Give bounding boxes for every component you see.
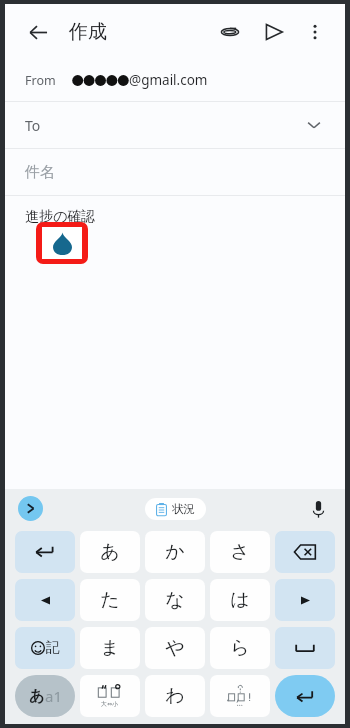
staticText: ら	[230, 636, 250, 660]
button[interactable]: 進捗の確認	[5, 196, 345, 489]
button[interactable]: その他のオプション	[299, 16, 331, 48]
staticText: 大⇔小	[101, 700, 119, 708]
staticText: あ	[100, 540, 120, 564]
staticText: 作成	[69, 20, 107, 44]
button[interactable]: や	[145, 627, 205, 669]
button[interactable]: は	[210, 579, 270, 621]
staticText: From	[25, 72, 56, 89]
button[interactable]: わ	[145, 675, 205, 717]
button[interactable]: た	[80, 579, 140, 621]
button[interactable]: 音声入力	[304, 495, 332, 523]
staticText: 件名	[25, 163, 55, 182]
staticText: 進捗の確認	[25, 208, 96, 226]
staticText: は	[230, 588, 250, 612]
button[interactable]: 濁点・半濁点	[80, 675, 140, 717]
staticText: To	[25, 116, 41, 135]
staticText: わ	[165, 684, 185, 708]
staticText: a1	[45, 686, 62, 706]
button[interactable]: 絵文字記号	[15, 627, 75, 669]
button[interactable]: 戻る	[23, 17, 53, 47]
button[interactable]: 添付ファイル	[213, 15, 247, 49]
button[interactable]: スペース	[275, 627, 335, 669]
button[interactable]: 送信	[257, 15, 291, 49]
staticText: な	[165, 588, 185, 612]
button[interactable]: 状況	[145, 498, 206, 520]
button[interactable]: 削除	[275, 531, 335, 573]
button[interactable]: な	[145, 579, 205, 621]
button[interactable]: ま	[80, 627, 140, 669]
button[interactable]: か	[145, 531, 205, 573]
staticText: 記	[46, 639, 60, 657]
staticText: 状況	[172, 502, 195, 516]
button[interactable]: To	[5, 102, 345, 148]
button[interactable]: ら	[210, 627, 270, 669]
button[interactable]: 件名	[5, 149, 345, 195]
staticText: ま	[100, 636, 120, 660]
staticText: か	[165, 540, 185, 564]
staticText: @gmail.com	[129, 71, 208, 89]
button[interactable]: 左	[15, 579, 75, 621]
button[interactable]: 入力モード切替	[15, 675, 75, 717]
button[interactable]: カーソル戻る	[15, 531, 75, 573]
button[interactable]: 右	[275, 579, 335, 621]
other: ハイライト	[42, 227, 82, 259]
button[interactable]: さ	[210, 531, 270, 573]
staticText: た	[100, 588, 120, 612]
button[interactable]: From	[5, 59, 345, 101]
button[interactable]: 改行	[275, 675, 335, 717]
button[interactable]: 句読点	[210, 675, 270, 717]
staticText: や	[165, 636, 185, 660]
button[interactable]: CC/BCC を展開	[301, 112, 327, 138]
staticText: あ	[29, 687, 45, 706]
staticText: さ	[230, 540, 250, 564]
button[interactable]: あ	[80, 531, 140, 573]
button[interactable]: 候補を展開	[18, 496, 43, 521]
